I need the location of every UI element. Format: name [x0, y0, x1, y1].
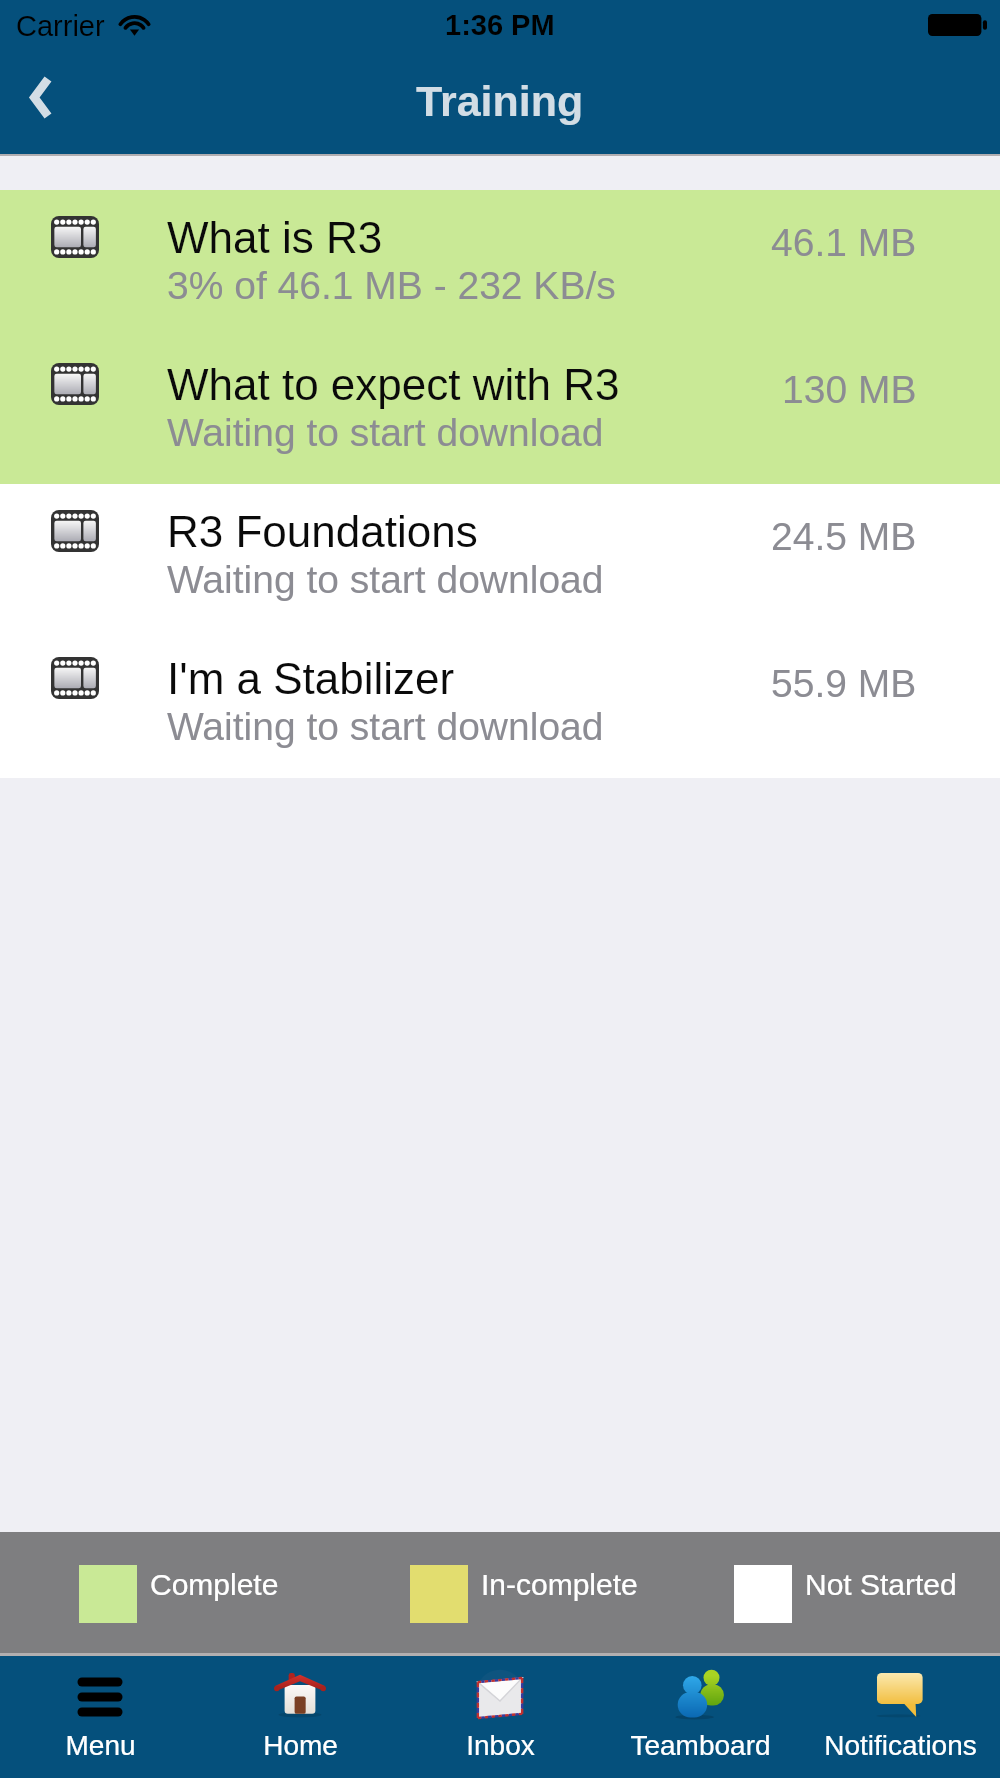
staticText: 46.1 MB — [771, 221, 917, 265]
staticText: Teamboard — [630, 1730, 771, 1761]
staticText: I'm a Stabilizer — [167, 654, 455, 703]
staticText: Home — [263, 1730, 338, 1761]
button[interactable]: Notifications — [800, 1656, 1000, 1778]
staticText: In-complete — [481, 1568, 638, 1602]
staticText: Carrier — [16, 10, 105, 42]
staticText: Training — [416, 77, 584, 125]
staticText: 130 MB — [782, 368, 917, 412]
staticText: What is R3 — [167, 213, 383, 262]
button[interactable]: Teamboard — [600, 1656, 800, 1778]
button[interactable]: Inbox — [400, 1656, 600, 1778]
button[interactable]: What to expect with R3 — [0, 337, 1000, 484]
staticText: Waiting to start download — [167, 558, 604, 602]
staticText: 24.5 MB — [771, 515, 917, 559]
button[interactable]: Menu — [0, 1656, 200, 1778]
staticText: Menu — [65, 1730, 136, 1761]
button[interactable]: R3 Foundations — [0, 484, 1000, 631]
staticText: 1:36 PM — [445, 9, 555, 41]
button[interactable]: Home — [200, 1656, 400, 1778]
staticText: 3% of 46.1 MB - 232 KB/s — [167, 264, 616, 308]
button[interactable]: Back — [0, 50, 88, 154]
button[interactable]: In-complete — [410, 1565, 638, 1623]
button[interactable]: Not Started — [734, 1565, 957, 1623]
staticText: Inbox — [466, 1730, 535, 1761]
staticText: Waiting to start download — [167, 411, 604, 455]
staticText: Complete — [150, 1568, 279, 1602]
staticText: Waiting to start download — [167, 705, 604, 749]
staticText: What to expect with R3 — [167, 360, 620, 409]
button[interactable]: I'm a Stabilizer — [0, 631, 1000, 778]
staticText: R3 Foundations — [167, 507, 478, 556]
staticText: Notifications — [824, 1730, 977, 1761]
button[interactable]: What is R3 — [0, 190, 1000, 337]
staticText: 55.9 MB — [771, 662, 917, 706]
button[interactable]: Complete — [79, 1565, 279, 1623]
staticText: Not Started — [805, 1568, 957, 1602]
